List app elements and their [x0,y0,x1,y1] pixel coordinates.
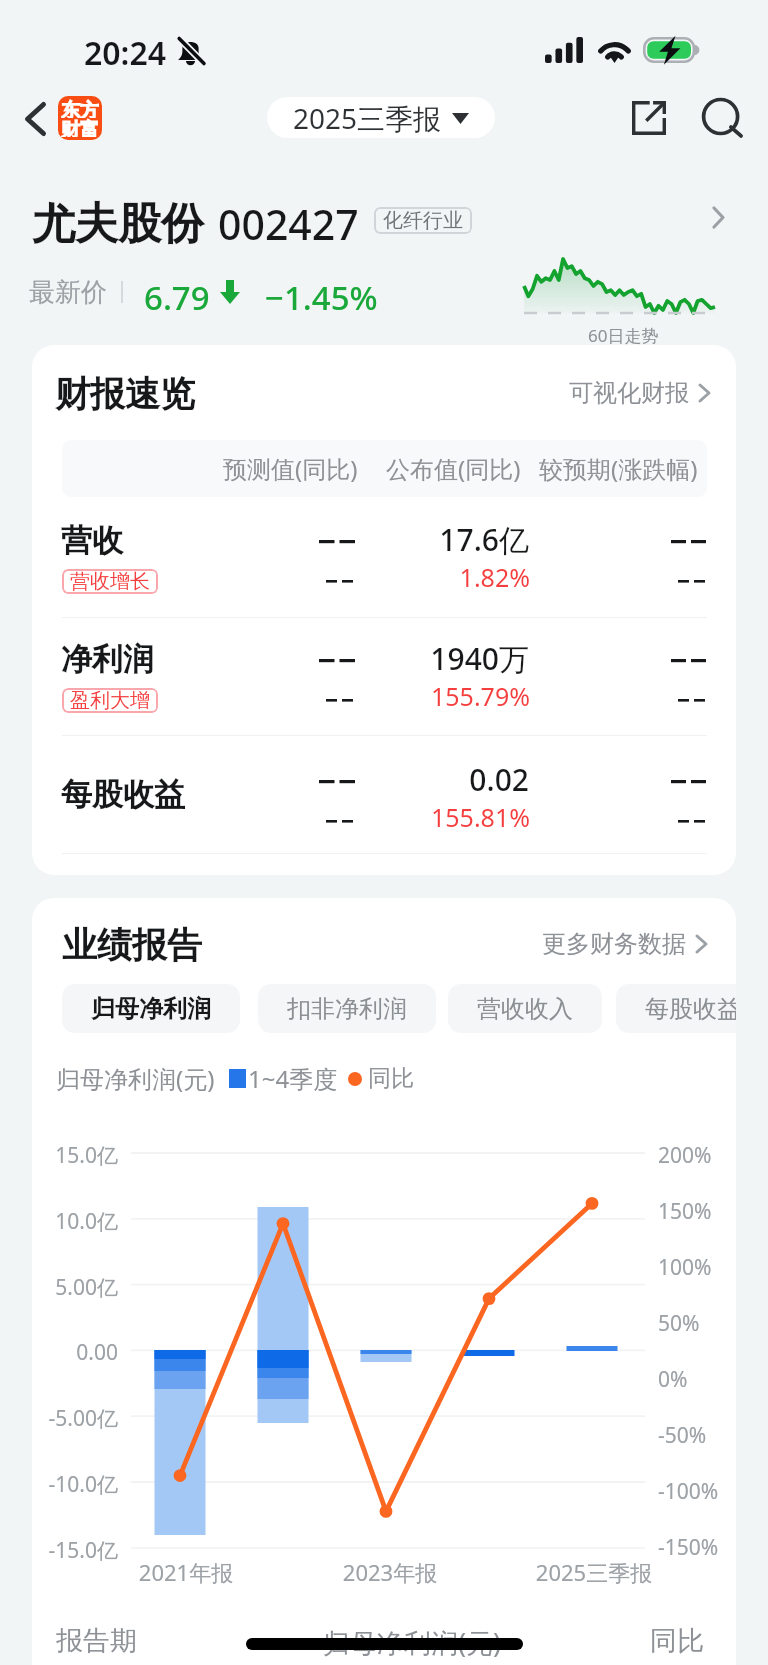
staticText: 50% [658,1309,700,1338]
staticText: 2025三季报 [293,99,442,137]
staticText: 1940万 [348,638,529,679]
staticText: 同比 [368,1064,414,1093]
staticText: 155.81% [348,800,530,834]
staticText: -50% [658,1421,707,1450]
staticText: 0% [658,1365,688,1394]
button[interactable]: 营收收入 [448,984,602,1033]
staticText: 1.82% [348,560,530,594]
button[interactable]: 东方 [58,96,102,140]
button[interactable]: 更多财务数据 [542,929,708,959]
button[interactable]: Share [622,91,676,145]
staticText: 财富 [61,118,99,137]
staticText: 较预期(涨跌幅) [539,452,698,485]
staticText: 20:24 [84,31,167,75]
staticText: 营收收入 [477,994,573,1024]
staticText: 2021年报 [111,1557,261,1587]
staticText: 15.0亿 [32,1141,118,1170]
staticText: 每股收益 [645,994,736,1024]
staticText: 盈利大增 [70,688,150,713]
staticText: 化纤行业 [383,208,463,233]
staticText: 2025三季报 [519,1557,669,1587]
staticText: 同比 [650,1624,704,1658]
staticText: 尤夫股份 [32,197,204,251]
staticText: -150% [658,1533,719,1562]
button[interactable]: Stock details [700,199,736,235]
staticText: 业绩报告 [62,923,202,967]
staticText: 最新价 [29,276,107,309]
button[interactable]: 2025三季报 [267,97,495,138]
button[interactable]: 归母净利润 [62,984,240,1033]
staticText: 更多财务数据 [542,929,686,959]
staticText: 200% [658,1141,712,1170]
staticText: 营收增长 [70,569,150,594]
staticText: 0.00 [32,1338,118,1367]
staticText: −1.45% [265,275,378,320]
staticText: -10.0亿 [32,1470,118,1499]
staticText: -5.00亿 [32,1404,118,1433]
button[interactable]: 每股收益 [616,984,736,1033]
staticText: 每股收益 [61,775,185,814]
staticText: 归母净利润(元) [323,1624,502,1661]
staticText: 可视化财报 [569,378,689,408]
staticText: 净利润 [61,640,154,679]
staticText: 100% [658,1253,712,1282]
staticText: 1~4季度 [248,1062,338,1095]
staticText: 东方 [61,99,99,118]
staticText: 财报速览 [55,372,195,416]
staticText: 6.79 [144,275,210,320]
staticText: 归母净利润(元) [56,1062,215,1095]
button[interactable]: 可视化财报 [569,378,711,408]
staticText: -15.0亿 [32,1536,118,1565]
staticText: 归母净利润 [91,994,211,1024]
staticText: 0.02 [348,759,529,800]
staticText: 17.6亿 [348,519,529,560]
staticText: 155.79% [348,679,530,713]
button[interactable]: Back [8,95,62,143]
staticText: 10.0亿 [32,1207,118,1236]
staticText: -100% [658,1477,719,1506]
staticText: 预测值(同比) [223,452,358,485]
staticText: 报告期 [56,1624,137,1658]
staticText: 5.00亿 [32,1273,118,1302]
button[interactable]: Search [696,91,750,145]
staticText: 2023年报 [315,1557,465,1587]
staticText: 营收 [61,521,123,560]
staticText: 150% [658,1197,712,1226]
staticText: 60日走势 [588,324,659,347]
button[interactable]: 扣非净利润 [258,984,436,1033]
staticText: 公布值(同比) [386,452,521,485]
staticText: 扣非净利润 [287,994,407,1024]
staticText: 002427 [218,196,359,252]
